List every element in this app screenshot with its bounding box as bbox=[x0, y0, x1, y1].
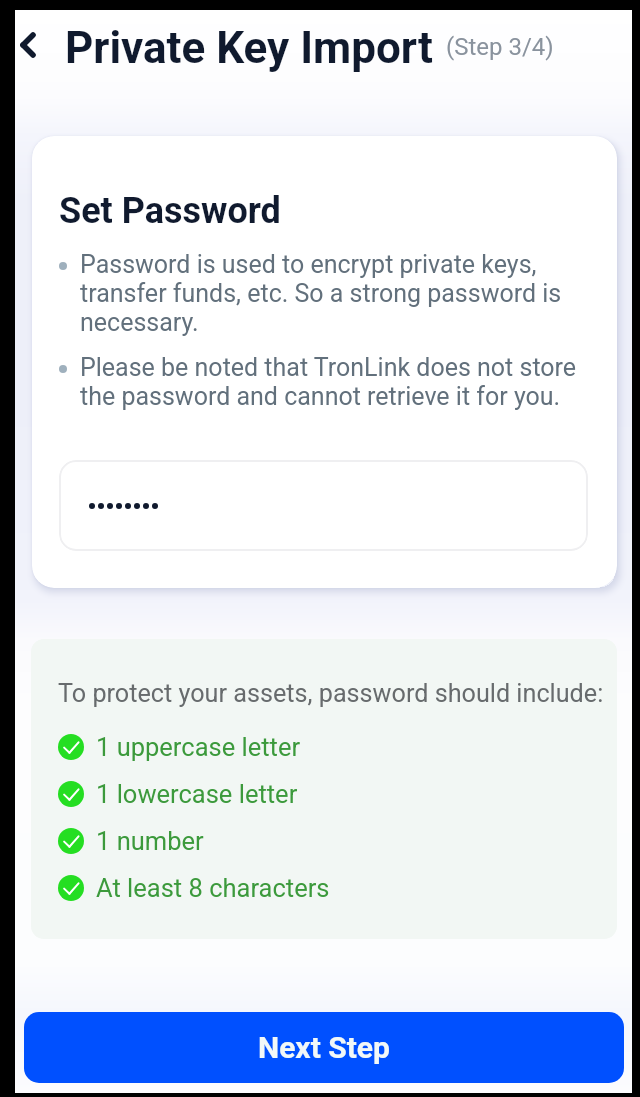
staticText: 1 uppercase letter bbox=[96, 732, 301, 762]
staticText: To protect your assets, password should … bbox=[58, 679, 604, 709]
button[interactable]: Password field bbox=[59, 460, 588, 551]
staticText: Please be noted that TronLink does not s… bbox=[80, 353, 605, 411]
staticText: 1 number bbox=[96, 826, 204, 856]
staticText: Password is used to encrypt private keys… bbox=[80, 250, 605, 337]
button[interactable]: Next Step bbox=[24, 1012, 624, 1083]
button[interactable]: Back bbox=[15, 10, 53, 86]
staticText: Next Step bbox=[258, 1030, 390, 1065]
staticText: At least 8 characters bbox=[96, 873, 330, 903]
staticText: (Step 3/4) bbox=[446, 33, 554, 61]
staticText: Private Key Import bbox=[65, 22, 433, 74]
staticText: 1 lowercase letter bbox=[96, 779, 298, 809]
staticText: Set Password bbox=[59, 190, 281, 232]
